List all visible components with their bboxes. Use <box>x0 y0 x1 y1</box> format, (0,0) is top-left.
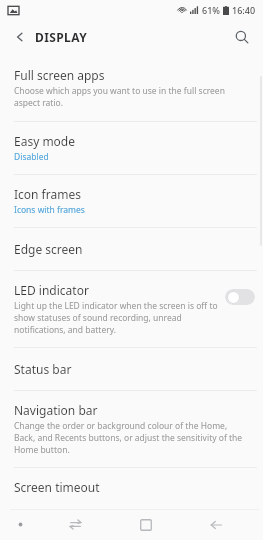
staticText: Screen timeout <box>14 479 100 495</box>
button[interactable]: Screen timeout <box>0 468 263 509</box>
staticText: Icon frames <box>14 186 81 202</box>
staticText: Edge screen <box>14 241 83 257</box>
button[interactable]: LED indicator <box>0 271 263 347</box>
button[interactable]: Search <box>229 24 255 50</box>
button[interactable]: LED indicator toggle <box>225 289 255 305</box>
staticText: 61% <box>202 4 220 16</box>
staticText: LED indicator <box>14 282 89 298</box>
button[interactable]: Full screen apps <box>0 54 263 121</box>
staticText: Navigation bar <box>14 402 98 418</box>
button[interactable]: Navigation bar <box>0 391 263 467</box>
staticText: Status bar <box>14 361 72 377</box>
button[interactable]: Switch input <box>40 509 111 540</box>
button[interactable]: Back <box>8 25 32 49</box>
button[interactable]: Icon frames <box>0 175 263 227</box>
staticText: DISPLAY <box>35 29 88 45</box>
staticText: Icons with frames <box>14 204 85 216</box>
button[interactable]: Status bar <box>0 348 263 390</box>
staticText: Light up the LED indicator when the scre… <box>14 300 219 336</box>
staticText: Choose which apps you want to use in the… <box>14 85 249 109</box>
staticText: 16:40 <box>232 4 256 16</box>
button[interactable]: Easy mode <box>0 122 263 174</box>
button[interactable]: Recents <box>111 509 181 540</box>
button[interactable]: Back <box>181 509 251 540</box>
button[interactable]: Edge screen <box>0 228 263 270</box>
staticText: Change the order or background colour of… <box>14 420 249 456</box>
staticText: Easy mode <box>14 133 76 149</box>
button[interactable]: Hide keyboard <box>0 509 40 540</box>
staticText: Full screen apps <box>14 67 105 83</box>
staticText: Disabled <box>14 151 49 163</box>
